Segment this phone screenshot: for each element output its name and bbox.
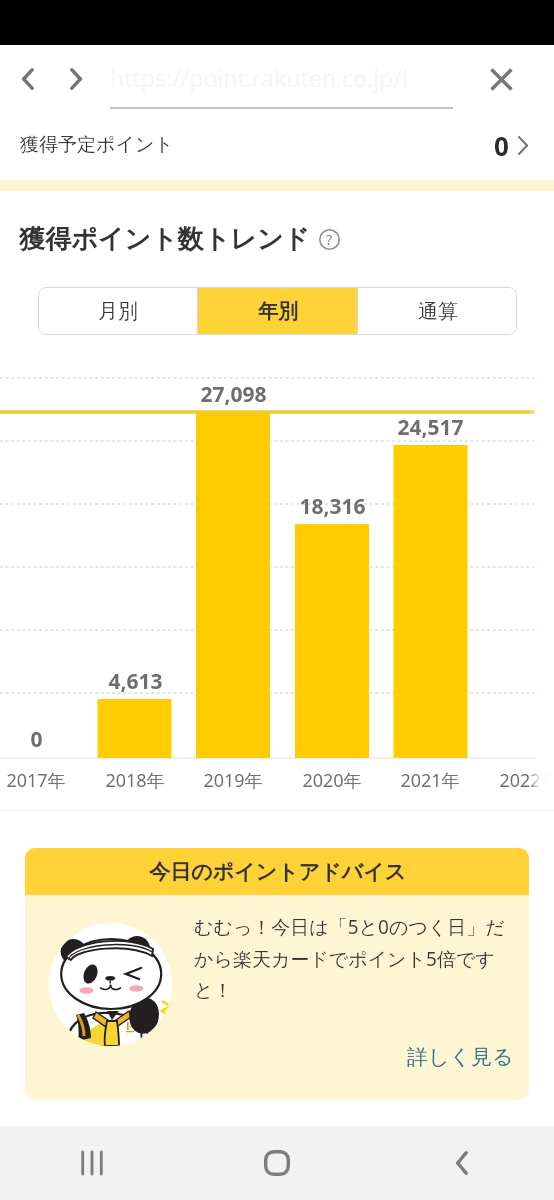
button[interactable]: 通算 [358,287,517,335]
staticText: https://point.rakuten.co.jp/l [110,62,408,93]
button[interactable]: Back [369,1126,554,1200]
staticText: 27,098 [200,380,267,409]
button[interactable]: 獲得予定ポイント [0,115,554,175]
button[interactable]: Forward [54,57,98,101]
staticText: 今日のポイントアドバイス [149,859,406,885]
staticText: 0 [30,725,43,754]
staticText: 0 [494,128,509,163]
staticText: 24,517 [397,413,464,442]
staticText: むむっ！今日は「5と0のつく日」だから楽天カードでポイント5倍ですと！ [194,914,519,1003]
staticText: 2020年 [302,768,362,793]
staticText: 2017年 [6,768,66,793]
staticText: 獲得予定ポイント [20,133,174,157]
staticText: 18,316 [299,492,366,521]
button[interactable]: Close [479,57,523,101]
staticText: 月別 [98,299,138,324]
staticText: 4,613 [108,667,163,696]
button[interactable]: Home [184,1126,369,1200]
staticText: 通算 [418,299,458,324]
staticText: 2018年 [105,768,165,793]
staticText: 獲得ポイント数トレンド [19,223,310,256]
staticText: 年別 [258,299,298,324]
button[interactable]: 月別 [38,287,197,335]
staticText: 2019年 [203,768,263,793]
button[interactable]: Back [6,57,50,101]
button[interactable]: Recent apps [0,1126,184,1200]
staticText: ? [326,230,333,249]
staticText: 2021年 [400,768,460,793]
staticText: 2022年 [499,768,554,793]
button[interactable]: 年別 [198,287,357,335]
button[interactable]: Help [315,225,343,253]
button[interactable]: 詳しく見る [407,1044,514,1070]
button[interactable]: 今日のポイントアドバイス [25,848,529,895]
